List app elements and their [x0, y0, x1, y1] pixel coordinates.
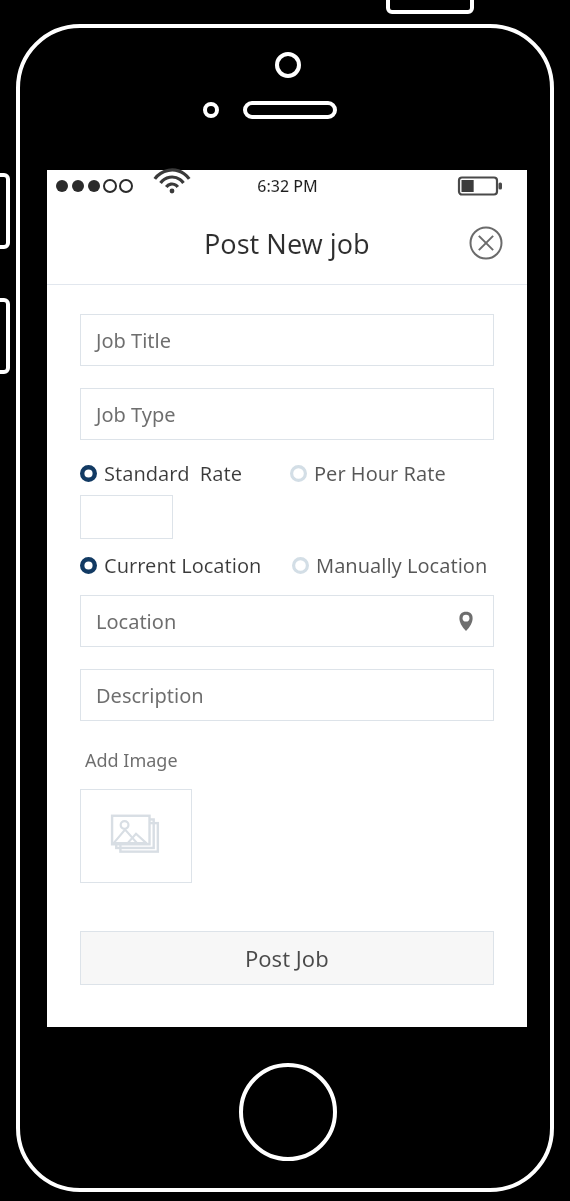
button[interactable]: Current Location: [80, 552, 292, 579]
staticText: Standard Rate: [104, 460, 243, 487]
staticText: Per Hour Rate: [314, 460, 446, 487]
button[interactable]: Post Job: [80, 931, 494, 985]
button[interactable]: Per Hour Rate: [290, 460, 446, 487]
button[interactable]: Job Title: [80, 314, 494, 366]
staticText: Description: [96, 682, 204, 709]
button[interactable]: Job Type: [80, 388, 494, 440]
button[interactable]: Standard Rate: [80, 460, 290, 487]
staticText: Job Title: [96, 327, 171, 354]
staticText: Location: [96, 608, 177, 635]
button[interactable]: [80, 495, 173, 539]
button[interactable]: Add image: [80, 789, 192, 883]
button[interactable]: Description: [80, 669, 494, 721]
button[interactable]: Location: [80, 595, 494, 647]
staticText: Add Image: [85, 748, 178, 773]
staticText: 6:32 PM: [257, 175, 318, 197]
staticText: Current Location: [104, 552, 262, 579]
staticText: Post Job: [245, 943, 329, 973]
staticText: Job Type: [96, 401, 176, 428]
button[interactable]: Close: [469, 226, 503, 260]
staticText: Post New job: [204, 225, 370, 262]
button[interactable]: Manually Location: [292, 552, 488, 579]
staticText: Manually Location: [316, 552, 488, 579]
